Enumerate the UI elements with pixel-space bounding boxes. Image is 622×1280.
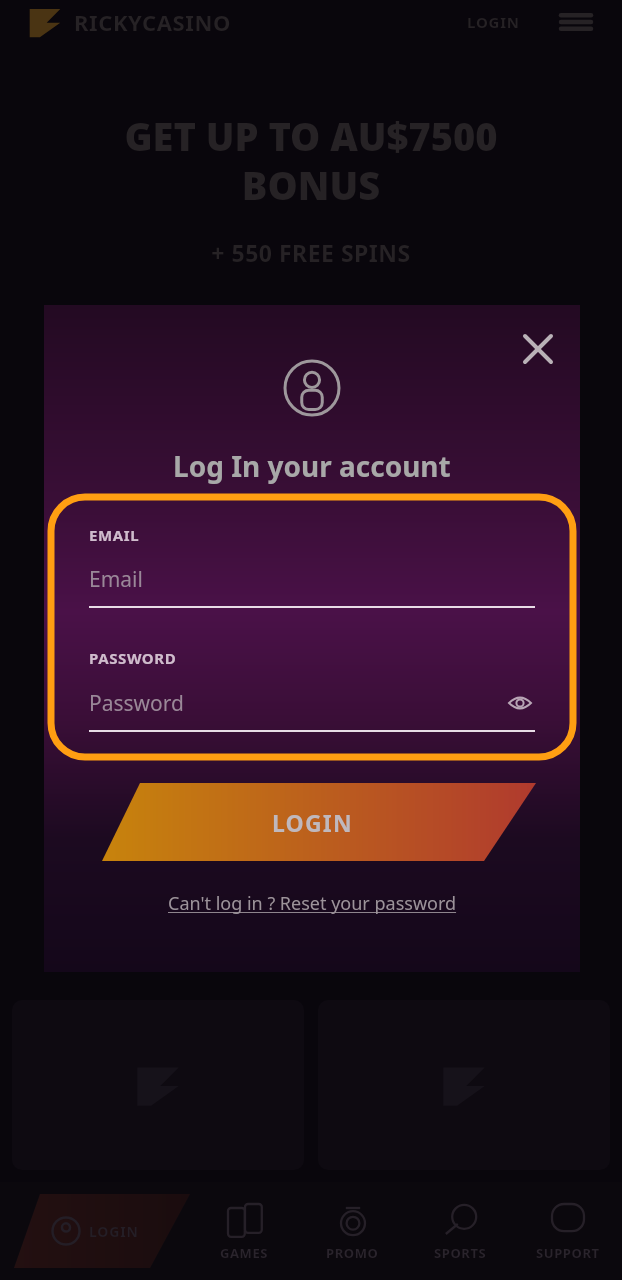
staticText: Log In your account <box>173 447 451 485</box>
button[interactable]: LOGIN <box>0 1182 190 1280</box>
staticText: EMAIL <box>89 525 140 545</box>
staticText: + 550 FREE SPINS <box>0 237 622 268</box>
button[interactable]: Close <box>516 327 560 371</box>
staticText: PASSWORD <box>89 648 177 668</box>
button[interactable]: PROMO <box>298 1182 406 1280</box>
staticText: Can't log in ? Reset your password <box>168 891 457 916</box>
button[interactable]: SPORTS <box>406 1182 514 1280</box>
button[interactable]: Password <box>89 688 535 732</box>
button[interactable]: LOGIN <box>457 4 530 40</box>
staticText: SPORTS <box>434 1244 487 1262</box>
button[interactable]: Menu <box>554 0 598 44</box>
button[interactable]: GAMES <box>190 1182 298 1280</box>
button[interactable]: Show password <box>505 688 535 718</box>
staticText: LOGIN <box>89 1222 139 1241</box>
button[interactable]: Can't log in ? Reset your password <box>160 885 465 922</box>
staticText: PROMO <box>326 1244 379 1262</box>
staticText: LOGIN <box>272 807 353 838</box>
button[interactable]: Ricky Casino logo <box>24 1 66 43</box>
button[interactable]: SUPPORT <box>514 1182 622 1280</box>
staticText: LOGIN <box>467 12 520 32</box>
staticText: SUPPORT <box>536 1244 600 1262</box>
staticText: Email <box>89 565 143 594</box>
staticText: Password <box>89 689 184 718</box>
staticText: RICKYCASINO <box>74 7 231 37</box>
button[interactable]: Email <box>89 565 535 608</box>
staticText: GAMES <box>220 1244 269 1262</box>
staticText: GET UP TO AU$7500 BONUS <box>40 110 582 211</box>
button[interactable]: LOGIN <box>88 783 536 861</box>
